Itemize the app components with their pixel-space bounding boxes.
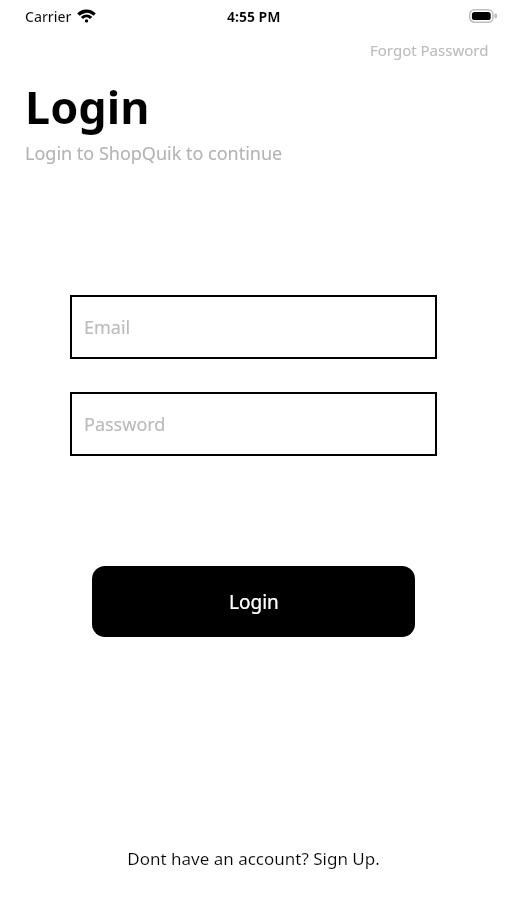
staticText: Forgot Password <box>370 40 489 60</box>
button[interactable]: Dont have an account? Sign Up. <box>107 843 400 874</box>
button[interactable]: Password <box>70 392 437 456</box>
staticText: Login to ShopQuik to continue <box>25 141 283 166</box>
staticText: Carrier <box>25 7 72 26</box>
button[interactable]: Login <box>92 566 415 637</box>
staticText: Dont have an account? Sign Up. <box>127 847 380 870</box>
staticText: Password <box>84 412 166 437</box>
staticText: Login <box>229 589 279 615</box>
button[interactable]: Email <box>70 295 437 359</box>
button[interactable]: Forgot Password <box>352 34 507 66</box>
staticText: 4:55 PM <box>227 7 281 26</box>
staticText: Login <box>25 76 150 137</box>
other: Wi-Fi signal <box>78 10 95 23</box>
other: Battery full <box>469 9 497 23</box>
staticText: Email <box>84 315 131 340</box>
